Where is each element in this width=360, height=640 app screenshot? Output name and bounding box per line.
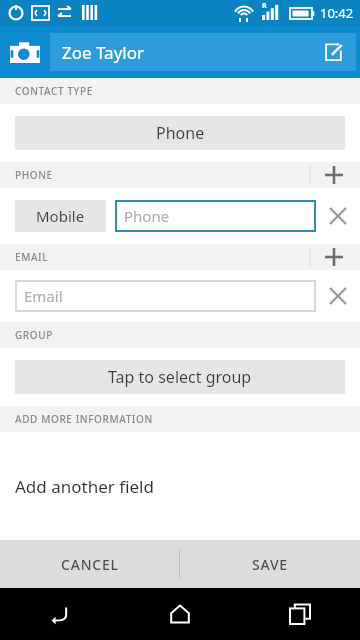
staticText: EMAIL [15,250,49,264]
button[interactable]: Add another field [0,432,360,540]
staticText: CONTACT TYPE [15,84,93,98]
button[interactable]: Tap to select group [15,360,345,394]
staticText: Email [24,286,63,306]
staticText: SAVE [252,555,288,574]
button[interactable]: CANCEL [0,540,179,588]
staticText: 10:42 [320,4,354,22]
staticText: R [262,1,267,11]
button[interactable]: Add email [308,244,360,270]
button[interactable]: Back [0,588,120,640]
button[interactable]: Home [120,588,240,640]
button[interactable]: Recent apps [240,588,360,640]
button[interactable]: Edit name [312,33,356,71]
button[interactable]: Phone [115,200,316,232]
button[interactable]: Add phone [308,162,360,188]
staticText: GROUP [15,328,53,342]
staticText: Add another field [15,475,154,498]
button[interactable]: Add photo [0,26,50,78]
staticText: Mobile [36,206,85,226]
staticText: Tap to select group [108,366,252,388]
button[interactable]: Clear email [316,274,360,318]
staticText: Phone [156,122,205,144]
staticText: CANCEL [61,555,119,574]
button[interactable]: SAVE [180,540,360,588]
staticText: Zoe Taylor [62,41,145,64]
staticText: ADD MORE INFORMATION [15,412,153,426]
button[interactable]: Clear phone [316,194,360,238]
button[interactable]: Phone [15,116,345,150]
button[interactable]: Email [15,280,316,312]
staticText: PHONE [15,168,53,182]
button[interactable]: Zoe Taylor [50,33,356,71]
button[interactable]: Mobile [15,200,106,232]
staticText: Phone [124,206,170,226]
